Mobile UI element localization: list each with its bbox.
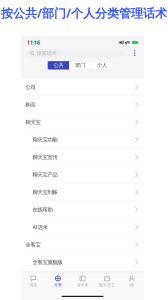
button[interactable]: 聊天宝产品: [21, 166, 144, 184]
button[interactable]: 分类: [46, 275, 70, 287]
button[interactable]: 在线帮助: [21, 201, 144, 219]
staticText: 聊天宝到账: [32, 189, 57, 195]
button[interactable]: 公共: [48, 61, 69, 70]
button[interactable]: 全客宝旗舰版: [21, 254, 144, 271]
button[interactable]: 话术库: [70, 275, 95, 287]
button[interactable]: 聊天宝到账: [21, 184, 144, 201]
staticText: 全客宝旗舰版: [32, 259, 62, 265]
staticText: 全客宝: [25, 241, 40, 248]
button[interactable]: 全客宝: [21, 236, 144, 254]
button[interactable]: 聊天宝宣传: [21, 149, 144, 166]
staticText: 聊天宝产品: [32, 171, 57, 178]
staticText: 聊天宝功能: [32, 136, 57, 143]
staticText: 公共: [53, 62, 63, 69]
staticText: 数字员工: [99, 282, 115, 287]
button[interactable]: 公司: [21, 79, 144, 96]
staticText: 公司: [25, 84, 35, 90]
button[interactable]: 购买: [21, 96, 144, 114]
staticText: 话术库: [76, 282, 88, 287]
staticText: 按公共/部门/个人分类管理话术: [1, 5, 167, 21]
button[interactable]: AI话术: [21, 219, 144, 236]
staticText: 分类: [54, 282, 62, 287]
staticText: 我: [130, 282, 134, 287]
button[interactable]: More options: [132, 50, 137, 57]
button[interactable]: 消息: [21, 275, 46, 287]
button[interactable]: 聊天宝功能: [21, 131, 144, 149]
staticText: 个人: [97, 62, 107, 69]
staticText: 搜索话术: [37, 50, 57, 56]
button[interactable]: 部门: [69, 61, 91, 70]
staticText: 聊天宝宣传: [32, 154, 57, 160]
staticText: 11:16: [27, 39, 40, 46]
button[interactable]: 个人: [91, 61, 113, 70]
staticText: 购买: [25, 101, 35, 108]
button[interactable]: 聊天宝: [21, 114, 144, 131]
staticText: 聊天宝: [25, 119, 40, 125]
staticText: 消息: [29, 282, 37, 287]
button[interactable]: 数字员工: [95, 275, 119, 287]
staticText: AI话术: [32, 224, 47, 231]
staticText: 在线帮助: [32, 206, 52, 213]
button[interactable]: 我: [119, 275, 144, 287]
staticText: 部门: [75, 62, 85, 69]
